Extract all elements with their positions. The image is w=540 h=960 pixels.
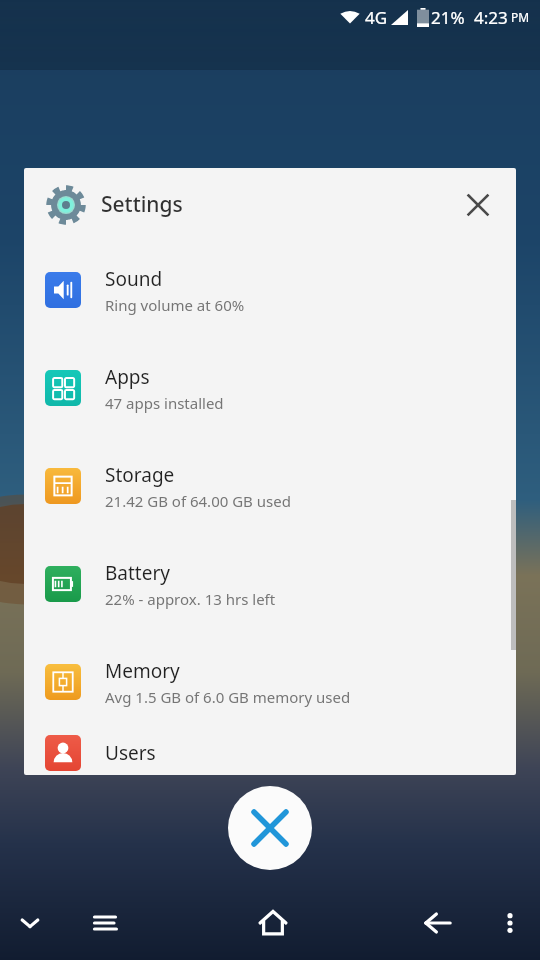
staticText: Battery [105,560,170,586]
button[interactable]: Recents [60,886,150,960]
button[interactable]: Users [24,731,516,775]
staticText: Ring volume at 60% [105,295,245,315]
button[interactable]: Close settings [228,786,312,870]
button[interactable]: Home [233,886,313,960]
staticText: 21.42 GB of 64.00 GB used [105,491,291,511]
staticText: Avg 1.5 GB of 6.0 GB memory used [105,687,351,707]
button[interactable]: Collapse [0,886,60,960]
staticText: 4:23 [474,6,508,29]
button[interactable]: Storage [24,437,516,535]
staticText: 47 apps installed [105,393,224,413]
button[interactable]: Battery [24,535,516,633]
staticText: 21% [431,6,465,29]
staticText: Sound [105,266,163,292]
button[interactable]: Sound [24,241,516,339]
button[interactable]: Back [396,886,480,960]
button[interactable]: Memory [24,633,516,731]
button[interactable]: Close [450,177,506,233]
staticText: Storage [105,462,175,488]
staticText: Settings [101,190,183,219]
staticText: Memory [105,658,180,684]
staticText: 22% - approx. 13 hrs left [105,589,276,609]
staticText: PM [511,9,530,25]
button[interactable]: Apps [24,339,516,437]
button[interactable]: More options [480,886,540,960]
staticText: 4G [365,6,388,29]
staticText: Apps [105,364,150,390]
staticText: Users [105,740,156,766]
